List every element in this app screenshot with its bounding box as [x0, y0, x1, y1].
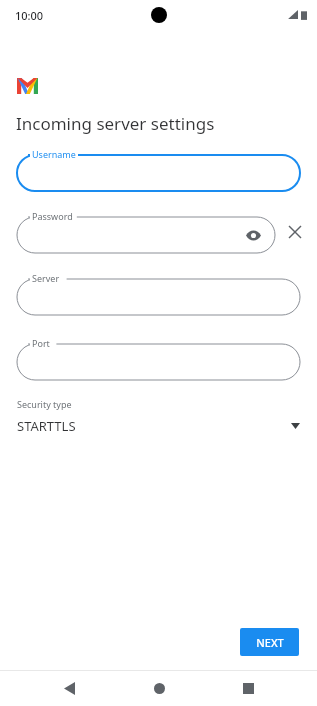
button[interactable]: Show password — [243, 225, 263, 245]
staticText: Incoming server settings — [16, 112, 215, 135]
staticText: Password — [32, 210, 73, 222]
staticText: NEXT — [256, 635, 284, 650]
button[interactable]: Show password — [17, 210, 275, 253]
button[interactable]: Recent apps — [228, 670, 268, 706]
button[interactable]: NEXT — [240, 628, 299, 656]
staticText: Port — [32, 337, 50, 349]
button[interactable]: Security type — [0, 398, 317, 435]
staticText: Username — [32, 148, 76, 160]
staticText: 10:00 — [15, 8, 44, 23]
button[interactable]: Username — [17, 148, 300, 191]
staticText: Server — [32, 272, 60, 284]
staticText: Security type — [17, 398, 72, 410]
button[interactable]: Port — [17, 337, 300, 380]
button[interactable]: Back — [49, 670, 89, 706]
button[interactable]: Home — [139, 670, 179, 706]
button[interactable]: Server — [17, 272, 300, 315]
button[interactable]: Clear password — [283, 220, 307, 244]
staticText: STARTTLS — [17, 417, 291, 435]
